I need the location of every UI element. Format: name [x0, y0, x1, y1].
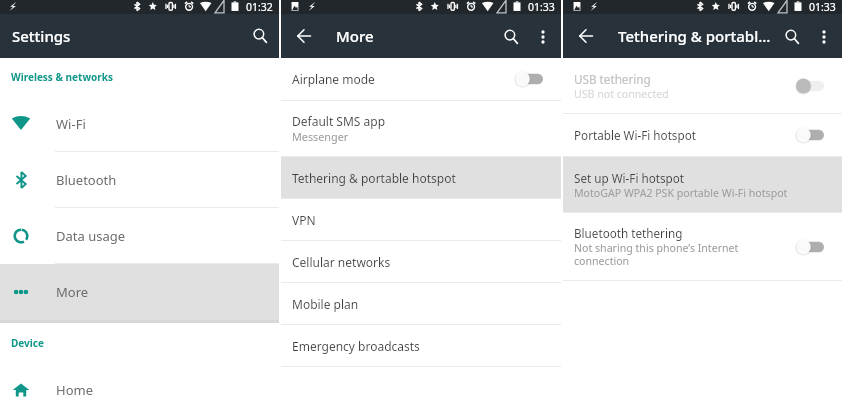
- button[interactable]: Home: [0, 363, 279, 417]
- button[interactable]: Bluetooth tethering: [563, 213, 842, 280]
- button[interactable]: Search: [775, 20, 808, 53]
- staticText: Device: [11, 336, 44, 350]
- button[interactable]: Wi-Fi: [0, 96, 279, 151]
- button[interactable]: USB tethering: [563, 58, 842, 113]
- staticText: Data usage: [56, 227, 126, 245]
- staticText: Mobile plan: [292, 296, 359, 312]
- button[interactable]: More options: [808, 22, 838, 52]
- staticText: Tethering & portable hotspot: [292, 170, 456, 186]
- staticText: Not sharing this phone’s Internet connec…: [574, 241, 744, 268]
- staticText: Wi-Fi: [56, 115, 86, 133]
- staticText: 01:33: [809, 0, 836, 14]
- staticText: Tethering & portabl...: [618, 26, 771, 46]
- staticText: Messenger: [292, 129, 349, 144]
- staticText: MotoGAP WPA2 PSK portable Wi-Fi hotspot: [574, 186, 788, 200]
- button[interactable]: Airplane mode: [281, 58, 561, 100]
- button[interactable]: More: [0, 264, 279, 320]
- staticText: Airplane mode: [292, 71, 375, 87]
- button[interactable]: Navigate up: [577, 27, 595, 45]
- button[interactable]: VPN: [281, 199, 561, 240]
- staticText: Portable Wi-Fi hotspot: [574, 127, 696, 143]
- staticText: Settings: [12, 26, 71, 46]
- staticText: Bluetooth tethering: [574, 225, 683, 241]
- staticText: Wireless & networks: [11, 70, 113, 84]
- staticText: More: [336, 26, 374, 46]
- button[interactable]: Navigate up: [295, 27, 313, 45]
- button[interactable]: Tethering & portable hotspot: [281, 157, 561, 198]
- staticText: Emergency broadcasts: [292, 338, 420, 354]
- staticText: Cellular networks: [292, 254, 391, 270]
- button[interactable]: Emergency broadcasts: [281, 325, 561, 366]
- staticText: Default SMS app: [292, 113, 386, 129]
- staticText: 01:33: [528, 0, 555, 14]
- button[interactable]: Data usage: [0, 208, 279, 263]
- staticText: USB not connected: [574, 87, 669, 101]
- staticText: VPN: [292, 212, 316, 228]
- staticText: Home: [56, 381, 93, 399]
- button[interactable]: Mobile plan: [281, 283, 561, 324]
- button[interactable]: Portable Wi-Fi hotspot: [563, 114, 842, 156]
- button[interactable]: Bluetooth: [0, 152, 279, 207]
- button[interactable]: More options: [527, 22, 557, 52]
- staticText: 01:32: [246, 0, 273, 14]
- button[interactable]: Toggle USB tethering: [790, 71, 830, 101]
- staticText: Set up Wi-Fi hotspot: [574, 170, 685, 186]
- button[interactable]: Search: [241, 17, 279, 55]
- button[interactable]: Toggle Portable Wi-Fi hotspot: [790, 120, 830, 150]
- staticText: Bluetooth: [56, 171, 117, 189]
- button[interactable]: Cellular networks: [281, 241, 561, 282]
- button[interactable]: Toggle Airplane mode: [509, 64, 549, 94]
- staticText: More: [56, 283, 89, 301]
- staticText: USB tethering: [574, 71, 651, 87]
- button[interactable]: Search: [494, 20, 527, 53]
- button[interactable]: Default SMS app: [281, 101, 561, 156]
- button[interactable]: Set up Wi-Fi hotspot: [563, 157, 842, 212]
- button[interactable]: Toggle Bluetooth tethering: [790, 232, 830, 262]
